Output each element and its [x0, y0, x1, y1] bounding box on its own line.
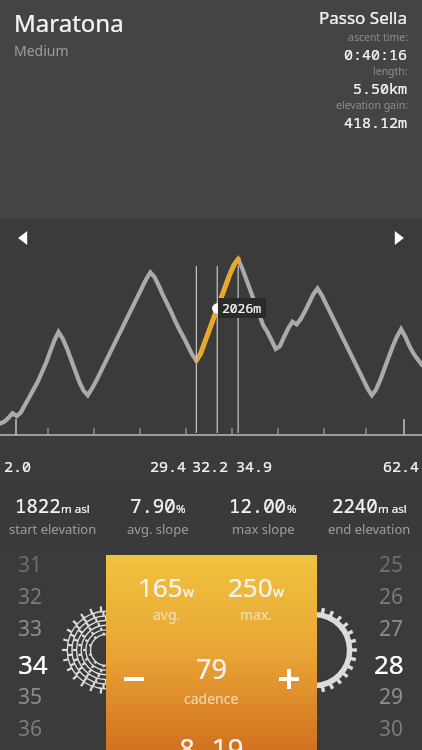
staticText: 2026m [222, 299, 262, 317]
staticText: 8.19 [179, 730, 244, 750]
staticText: 36 [18, 714, 43, 743]
staticText: length: [373, 64, 408, 78]
staticText: ascent time: [348, 30, 408, 44]
staticText: elevation gain: [336, 98, 408, 112]
staticText: 25 [379, 550, 404, 579]
staticText: 1822 [15, 493, 61, 519]
button[interactable]: Next climb [386, 225, 412, 251]
staticText: 12.00 [229, 493, 287, 519]
staticText: 165 [138, 569, 183, 604]
staticText: w [183, 582, 195, 601]
staticText: % [287, 501, 297, 517]
button[interactable]: 1822 [0, 493, 105, 538]
staticText: start elevation [9, 520, 97, 538]
staticText: max. [240, 605, 273, 624]
staticText: Maratona [14, 6, 124, 39]
staticText: 62.4 [383, 456, 420, 476]
staticText: m asl [61, 501, 90, 517]
staticText: 79 [196, 650, 227, 687]
staticText: % [176, 501, 186, 517]
staticText: 2240 [332, 493, 378, 519]
staticText: 0:40:16 [344, 44, 408, 64]
staticText: 35 [18, 682, 43, 711]
staticText: m asl [378, 501, 407, 517]
staticText: 2.0 [4, 456, 32, 476]
staticText: 32.2 [192, 456, 229, 476]
staticText: 29.4 [150, 456, 187, 476]
staticText: 26 [379, 582, 404, 611]
staticText: 31 [18, 550, 43, 579]
staticText: max slope [232, 520, 295, 538]
button[interactable]: 2240 [316, 493, 422, 538]
staticText: 33 [18, 614, 43, 643]
staticText: 250 [228, 569, 273, 604]
staticText: 34.9 [236, 456, 273, 476]
staticText: cadence [184, 689, 239, 708]
staticText: w [273, 582, 285, 601]
staticText: Medium [14, 41, 69, 60]
button[interactable]: Increase cadence [261, 655, 317, 703]
staticText: avg. slope [127, 520, 189, 538]
staticText: 7.90 [130, 493, 176, 519]
staticText: 418.12m [344, 112, 408, 132]
button[interactable]: Decrease cadence [106, 655, 162, 703]
staticText: end elevation [328, 520, 411, 538]
staticText: 30 [379, 714, 404, 743]
staticText: Passo Sella [319, 6, 408, 29]
button[interactable]: 7.90 [105, 493, 210, 538]
button[interactable]: 12.00 [210, 493, 316, 538]
staticText: 34 [18, 646, 48, 681]
staticText: 29 [379, 682, 404, 711]
staticText: 27 [379, 614, 404, 643]
staticText: 5.50km [353, 78, 408, 98]
staticText: 28 [374, 646, 404, 681]
button[interactable]: Previous climb [10, 225, 36, 251]
staticText: 32 [18, 582, 43, 611]
staticText: avg. [153, 605, 181, 624]
